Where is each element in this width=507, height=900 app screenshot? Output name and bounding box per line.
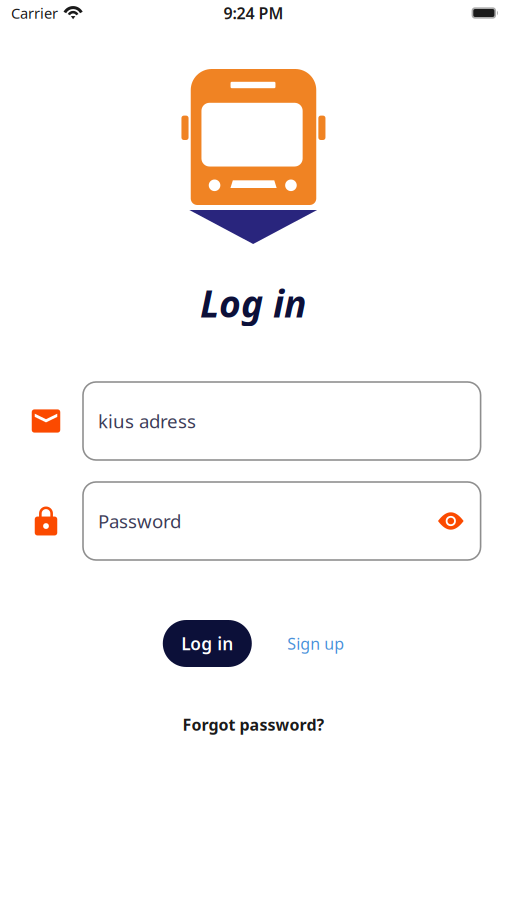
button[interactable]: Forgot password? [182, 714, 324, 735]
button[interactable]: kius adress [83, 382, 481, 460]
staticText: Forgot password? [182, 714, 324, 735]
staticText: Log in [181, 632, 233, 655]
button[interactable]: Show password [438, 512, 464, 530]
staticText: Password [98, 509, 181, 533]
button[interactable]: Log in [163, 620, 252, 667]
button[interactable]: Sign up [287, 633, 344, 654]
staticText: Sign up [287, 633, 344, 654]
staticText: 9:24 PM [223, 2, 283, 24]
staticText: kius adress [98, 409, 196, 433]
staticText: Carrier [11, 3, 58, 23]
button[interactable]: Password [83, 482, 481, 560]
staticText: Log in [200, 278, 307, 328]
